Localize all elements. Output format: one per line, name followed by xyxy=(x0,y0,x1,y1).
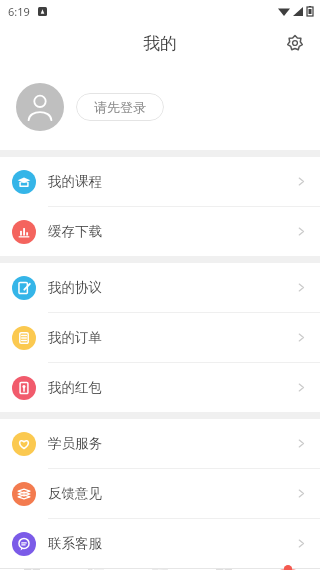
button[interactable]: 课程 xyxy=(192,569,256,570)
staticText: 缓存下载 xyxy=(48,223,102,240)
button[interactable]: 我的 xyxy=(256,569,320,570)
button[interactable]: 直播 xyxy=(128,569,192,570)
staticText: 我的订单 xyxy=(48,329,102,346)
staticText: 我的协议 xyxy=(48,279,102,296)
button[interactable]: 我的课程 xyxy=(0,157,320,206)
staticText: 我的 xyxy=(143,33,177,54)
staticText: 我的课程 xyxy=(48,173,102,190)
staticText: 请先登录 xyxy=(94,99,146,115)
button[interactable]: 联系客服 xyxy=(0,519,320,568)
button[interactable]: 缓存下载 xyxy=(0,207,320,256)
button[interactable]: 学员服务 xyxy=(0,419,320,468)
button[interactable]: 我的订单 xyxy=(0,313,320,362)
button[interactable]: 请先登录 xyxy=(76,93,164,121)
button[interactable]: 反馈意见 xyxy=(0,469,320,518)
staticText: 我的红包 xyxy=(48,379,102,396)
staticText: 联系客服 xyxy=(48,535,102,552)
button[interactable]: 首页 xyxy=(0,569,64,570)
button[interactable]: 我的协议 xyxy=(0,263,320,312)
staticText: 反馈意见 xyxy=(48,485,102,502)
staticText: 6:19 xyxy=(8,4,30,19)
button[interactable]: 我的红包 xyxy=(0,363,320,412)
button[interactable]: 题库 xyxy=(64,569,128,570)
staticText: 学员服务 xyxy=(48,435,102,452)
button[interactable]: Settings xyxy=(280,28,310,58)
